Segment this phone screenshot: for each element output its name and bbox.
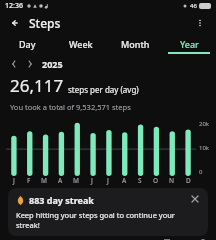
staticText: J: [107, 176, 109, 185]
button[interactable]: Next year: [24, 58, 36, 70]
staticText: J: [13, 176, 15, 185]
staticText: 10k: [199, 144, 210, 152]
staticText: M: [73, 176, 79, 185]
staticText: S: [138, 176, 142, 185]
button[interactable]: Day: [0, 34, 54, 54]
button[interactable]: Dismiss: [190, 194, 200, 204]
staticText: Steps: [29, 15, 61, 31]
button[interactable]: Back: [8, 15, 24, 31]
staticText: J: [91, 176, 93, 185]
button[interactable]: 883 day streak: [8, 188, 208, 236]
staticText: N: [169, 176, 175, 185]
button[interactable]: Week: [54, 34, 108, 54]
staticText: Year: [180, 38, 199, 50]
button[interactable]: Month: [108, 34, 162, 54]
staticText: Week: [69, 38, 93, 50]
button[interactable]: Previous year: [8, 58, 20, 70]
staticText: 12:36: [5, 1, 23, 11]
staticText: You took a total of 9,532,571 steps: [10, 102, 131, 112]
staticText: 20k: [199, 120, 210, 128]
staticText: steps per day (avg): [68, 84, 139, 95]
staticText: 883 day streak: [29, 194, 94, 206]
staticText: 26,117: [10, 74, 64, 97]
staticText: F: [27, 176, 31, 185]
staticText: Month: [121, 38, 150, 50]
button[interactable]: More options: [192, 15, 208, 31]
staticText: 2025: [42, 58, 63, 70]
staticText: M: [41, 176, 47, 185]
staticText: Day: [19, 38, 36, 50]
staticText: 0: [199, 168, 203, 176]
staticText: A: [122, 176, 127, 185]
staticText: 46: [190, 2, 197, 10]
button[interactable]: Year: [162, 34, 216, 54]
staticText: Keep hitting your steps goal to continue…: [16, 210, 200, 230]
staticText: O: [153, 176, 159, 185]
staticText: D: [186, 176, 191, 185]
staticText: A: [58, 176, 63, 185]
